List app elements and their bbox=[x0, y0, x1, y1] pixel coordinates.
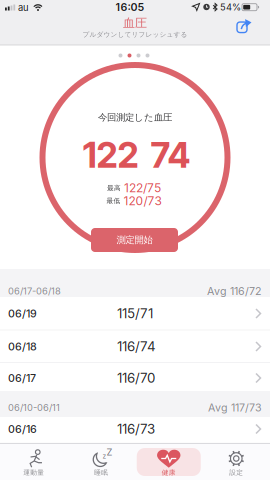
staticText: Z bbox=[106, 446, 112, 457]
staticText: 設定 bbox=[229, 468, 243, 477]
button[interactable]: 睡眠 bbox=[69, 446, 133, 478]
button[interactable] bbox=[235, 18, 251, 34]
staticText: 74 bbox=[150, 134, 190, 176]
staticText: 06/17-06/18 bbox=[8, 285, 61, 296]
staticText: 健康 bbox=[162, 468, 176, 477]
button[interactable]: 測定開始 bbox=[91, 228, 178, 252]
button[interactable]: 健康 bbox=[137, 446, 201, 478]
staticText: 122/75 bbox=[124, 181, 161, 195]
staticText: 116/73 bbox=[117, 421, 155, 437]
staticText: 54% bbox=[220, 1, 241, 12]
staticText: 06/19 bbox=[8, 307, 37, 320]
staticText: 116/74 bbox=[117, 339, 156, 354]
staticText: Avg 117/73 bbox=[208, 401, 262, 414]
button[interactable]: 06/16 bbox=[8, 421, 262, 437]
staticText: 最高 bbox=[107, 184, 121, 192]
staticText: 122 bbox=[82, 134, 138, 176]
staticText: 最低 bbox=[106, 197, 120, 205]
button[interactable]: 06/18 bbox=[8, 339, 262, 354]
button[interactable]: 06/19 bbox=[8, 306, 262, 321]
staticText: 06/10-06/11 bbox=[8, 402, 60, 413]
staticText: プルダウンしてリフレッシュする bbox=[82, 30, 187, 39]
staticText: Avg 116/72 bbox=[207, 285, 262, 297]
staticText: 115/71 bbox=[117, 306, 153, 321]
button[interactable]: 運動量 bbox=[2, 446, 66, 478]
staticText: 120/73 bbox=[123, 194, 161, 208]
button[interactable]: 設定 bbox=[204, 446, 268, 478]
staticText: 16:05 bbox=[115, 1, 144, 13]
button[interactable]: 06/17 bbox=[8, 370, 262, 386]
staticText: 運動量 bbox=[23, 468, 44, 477]
staticText: z bbox=[102, 452, 106, 460]
staticText: 測定開始 bbox=[116, 234, 152, 246]
staticText: 116/70 bbox=[117, 370, 155, 386]
staticText: 今回測定した血圧 bbox=[98, 112, 172, 123]
staticText: 06/18 bbox=[8, 340, 37, 353]
staticText: 睡眠 bbox=[94, 468, 108, 477]
staticText: 06/17 bbox=[8, 372, 36, 384]
staticText: 血圧 bbox=[123, 16, 147, 30]
staticText: au bbox=[18, 2, 29, 13]
staticText: 06/16 bbox=[8, 423, 37, 435]
